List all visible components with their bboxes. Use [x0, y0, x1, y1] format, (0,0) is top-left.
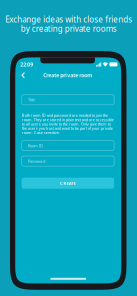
staticText: Room ID: [28, 143, 43, 148]
button[interactable]: Title: [22, 95, 114, 105]
staticText: Title: [28, 97, 35, 102]
button[interactable]: Password: [22, 156, 114, 166]
staticText: Password: [28, 158, 45, 164]
staticText: 22:09: [20, 61, 33, 68]
staticText: Create private room: [43, 72, 92, 79]
button[interactable]: Back: [18, 69, 28, 81]
staticText: CREATE: [60, 180, 76, 186]
button[interactable]: CREATE: [22, 178, 114, 189]
button[interactable]: Room ID: [22, 141, 114, 151]
staticText: Both room ID and password are needed to …: [22, 113, 114, 135]
staticText: Exchange ideas with close friends by cre…: [5, 14, 132, 34]
